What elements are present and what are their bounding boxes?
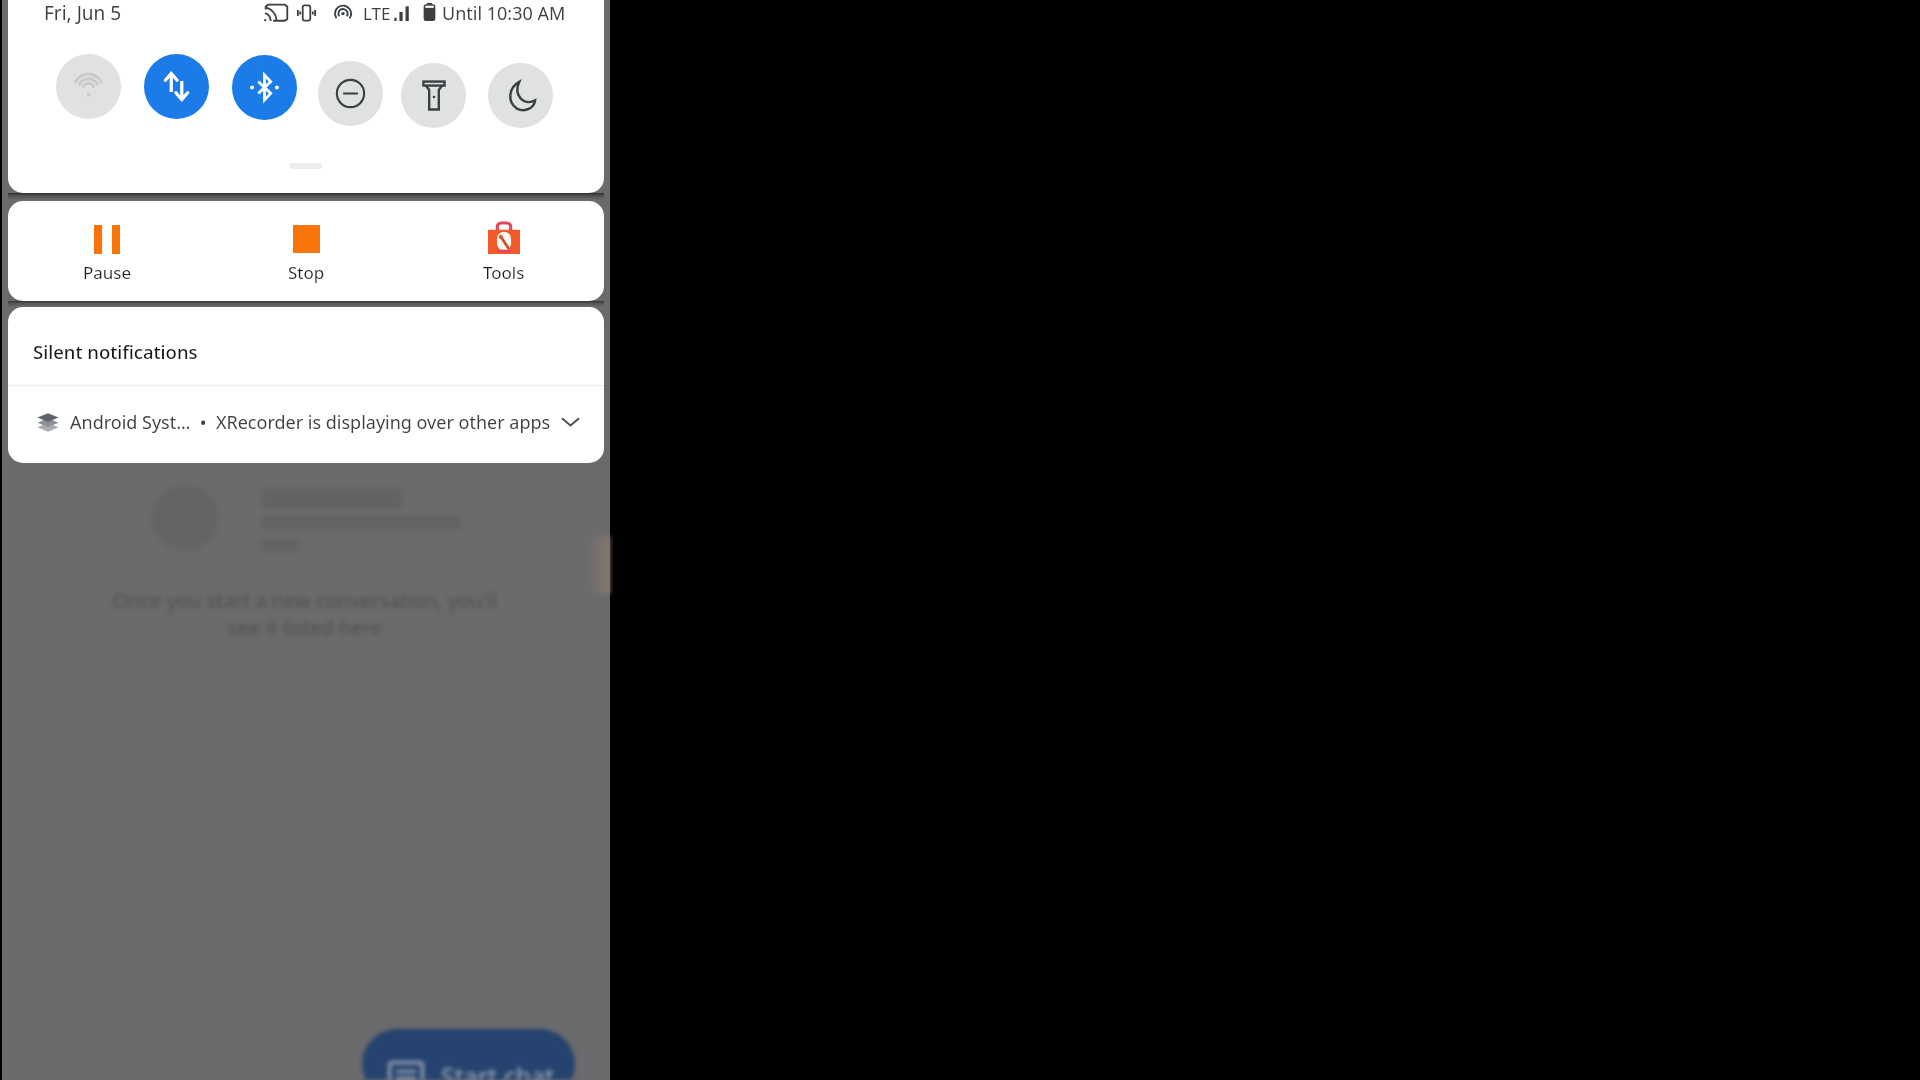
button[interactable]: Expand notification — [548, 400, 592, 444]
staticText: Android Syst… • XRecorder is displaying … — [70, 410, 551, 435]
staticText: Until 10:30 AM — [442, 1, 566, 26]
button[interactable]: Bluetooth — [232, 55, 297, 120]
staticText: LTE — [363, 2, 391, 25]
staticText: Start chat — [441, 1059, 555, 1080]
button[interactable]: Mobile data — [144, 54, 209, 119]
button[interactable]: Start chat — [362, 1029, 575, 1080]
button[interactable]: Stop — [251, 201, 361, 301]
staticText: Silent notifications — [33, 339, 198, 364]
button[interactable]: Flashlight — [401, 63, 466, 128]
staticText: Fri, Jun 5 — [44, 0, 122, 26]
button[interactable]: Pause — [52, 201, 162, 301]
staticText: Pause — [83, 261, 132, 284]
button[interactable]: Android Syst… • XRecorder is displaying … — [8, 386, 604, 463]
button[interactable]: Tools — [449, 201, 559, 301]
button[interactable]: Dark theme — [488, 63, 553, 128]
button[interactable]: Expand quick settings — [276, 152, 334, 180]
staticText: Once you start a new conversation, you'l… — [0, 587, 610, 641]
staticText: Stop — [288, 261, 325, 284]
staticText: Tools — [483, 261, 525, 284]
button[interactable]: Wi-Fi — [56, 54, 121, 119]
button[interactable]: Do not disturb — [318, 61, 383, 126]
